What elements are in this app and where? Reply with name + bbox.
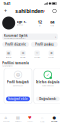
staticText: Ayarlar	[48, 57, 54, 58]
staticText: ♡	[36, 52, 38, 55]
staticText: Profilini tamamla	[2, 61, 29, 65]
staticText: ⌂	[4, 115, 7, 120]
button[interactable]: Fotoğraf ekle	[6, 97, 30, 101]
staticText: ●	[52, 115, 55, 120]
staticText: Doğrulandı	[39, 97, 56, 101]
button[interactable]: ▤	[2, 50, 16, 58]
button[interactable]: Add listing	[2, 7, 9, 14]
staticText: Mesajlar	[20, 57, 26, 58]
button[interactable]: ⌂	[0, 113, 12, 124]
staticText: Numaranı onayla	[42, 85, 54, 87]
staticText: Daha fazla ilan, daha fazla müşteri	[4, 38, 25, 39]
button[interactable]: Profil düzenle	[2, 42, 29, 47]
button[interactable]: ⚙	[44, 50, 58, 58]
staticText: +	[4, 7, 7, 15]
staticText: Fotoğraf ekle	[8, 97, 28, 101]
staticText: Favoriler	[34, 57, 41, 58]
staticText: Favori	[27, 120, 32, 122]
staticText: İlan	[39, 25, 41, 27]
button[interactable]: ◌	[36, 113, 48, 124]
staticText: ◌	[41, 115, 43, 120]
staticText: Profil fotoğrafı	[7, 80, 29, 84]
staticText: ⚙	[50, 52, 52, 55]
staticText: Kategori	[15, 120, 21, 122]
staticText: ☺	[16, 72, 20, 77]
staticText: İlanlarım	[6, 57, 11, 58]
staticText: %60 tamamlandı	[2, 65, 12, 67]
button[interactable]: Profil paylaş	[31, 42, 58, 47]
staticText: ▤	[16, 115, 20, 120]
staticText: Bireysel	[17, 24, 23, 26]
staticText: Arama	[39, 121, 44, 123]
staticText: Kurumsal Üyelik	[4, 34, 28, 37]
button[interactable]: Kurumsal Üyelik	[2, 33, 58, 40]
staticText: Anasayfa	[2, 120, 9, 122]
button[interactable]: Notifications	[51, 7, 58, 14]
staticText: Hesabım	[51, 120, 57, 122]
staticText: Ayşe K.	[17, 20, 27, 24]
staticText: Profil paylaş	[35, 43, 53, 46]
button[interactable]: ●	[48, 113, 60, 124]
button[interactable]: Doğrulandı	[36, 97, 60, 101]
staticText: Profil düzenle	[5, 43, 26, 46]
button[interactable]: ♡	[30, 50, 44, 58]
staticText: ▤	[7, 52, 10, 55]
staticText: Güven kazan	[13, 85, 23, 87]
button[interactable]: ♥	[24, 113, 36, 124]
button[interactable]: 84	[47, 19, 58, 27]
staticText: sahibinden	[15, 7, 43, 15]
staticText: 84	[50, 19, 54, 25]
staticText: ✉	[22, 52, 24, 55]
staticText: Telefon doğrula	[36, 80, 60, 84]
staticText: ✓	[46, 72, 49, 77]
staticText: 9:41	[3, 1, 10, 6]
staticText: ›	[55, 34, 56, 39]
staticText: Takip	[50, 25, 54, 27]
staticText: 12	[38, 19, 42, 25]
button[interactable]: ✉	[16, 50, 30, 58]
staticText: ♥	[28, 115, 32, 120]
button[interactable]: ▤	[12, 113, 24, 124]
button[interactable]: 12	[34, 19, 45, 27]
